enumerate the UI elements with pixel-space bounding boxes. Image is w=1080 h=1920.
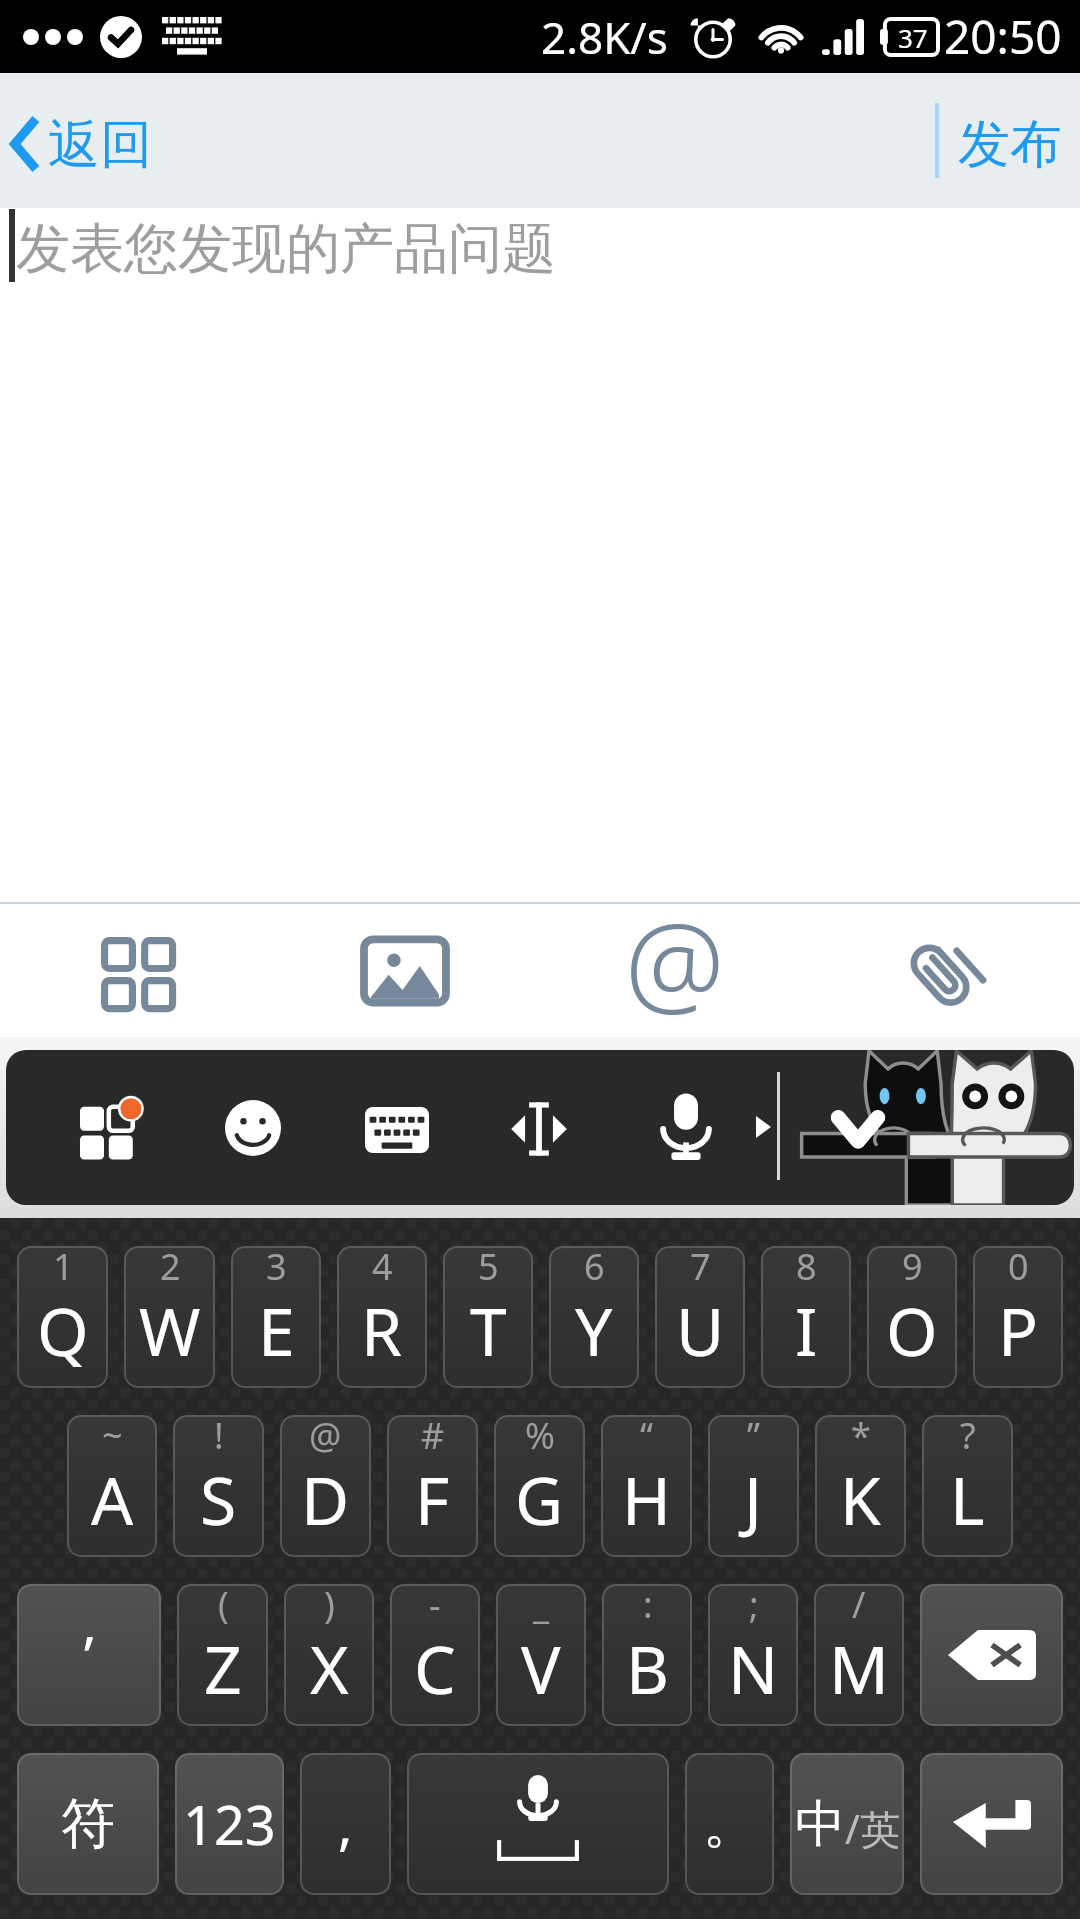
button[interactable]: 3	[231, 1246, 321, 1388]
button[interactable]: ?	[922, 1415, 1013, 1557]
button[interactable]: #	[387, 1415, 478, 1557]
staticText: O	[886, 1285, 938, 1375]
staticText: 3	[266, 1246, 287, 1291]
staticText: L	[950, 1454, 985, 1544]
staticText: /	[852, 1584, 866, 1629]
staticText: G	[515, 1454, 564, 1544]
button[interactable]: @	[280, 1415, 371, 1557]
staticText: _	[533, 1584, 549, 1629]
button[interactable]: 0	[973, 1246, 1063, 1388]
button[interactable]: Add image	[270, 904, 540, 1037]
staticText: /英	[845, 1801, 900, 1856]
button[interactable]: cn	[790, 1753, 904, 1895]
button[interactable]: enter	[920, 1753, 1063, 1895]
button[interactable]: ’	[17, 1584, 161, 1726]
button[interactable]: Emoji	[225, 1100, 281, 1156]
staticText: 7	[690, 1246, 711, 1291]
staticText: “	[640, 1415, 653, 1460]
staticText: 123	[183, 1787, 276, 1861]
staticText: ;	[749, 1584, 759, 1629]
button[interactable]: 4	[337, 1246, 427, 1388]
staticText: 8	[796, 1246, 817, 1291]
staticText: I	[795, 1285, 818, 1375]
button[interactable]: 9	[867, 1246, 957, 1388]
staticText: 20:50	[944, 5, 1062, 68]
button[interactable]: 。	[685, 1753, 774, 1895]
staticText: :	[643, 1584, 653, 1629]
staticText: E	[258, 1285, 295, 1375]
staticText: T	[470, 1285, 507, 1375]
staticText: V	[521, 1623, 561, 1713]
button[interactable]: %	[494, 1415, 585, 1557]
staticText: Y	[575, 1285, 613, 1375]
button[interactable]: 返回	[0, 88, 176, 194]
button[interactable]: -	[390, 1584, 480, 1726]
button[interactable]: “	[601, 1415, 692, 1557]
button[interactable]: Voice input	[660, 1092, 712, 1162]
button[interactable]: space	[407, 1753, 669, 1895]
staticText: -	[429, 1584, 441, 1629]
staticText: U	[676, 1285, 725, 1375]
staticText: 中	[795, 1793, 845, 1856]
button[interactable]: Keyboard layout	[365, 1107, 429, 1153]
button[interactable]: Templates	[0, 904, 270, 1037]
staticText: ”	[747, 1415, 760, 1460]
staticText: 发表您发现的产品问题	[16, 215, 556, 283]
staticText: X	[310, 1623, 349, 1713]
staticText: P	[998, 1285, 1038, 1375]
button[interactable]: *	[815, 1415, 906, 1557]
staticText: Q	[37, 1285, 89, 1375]
button[interactable]: 5	[443, 1246, 533, 1388]
button[interactable]: Move cursor	[510, 1098, 568, 1160]
button[interactable]: Mention user	[540, 904, 810, 1037]
button[interactable]: ~	[67, 1415, 157, 1557]
staticText: 2	[160, 1246, 181, 1291]
staticText: ~	[102, 1415, 123, 1460]
staticText: @	[309, 1415, 342, 1460]
staticText: 2.8K/s	[541, 7, 668, 67]
button[interactable]: 发布	[939, 88, 1080, 194]
button[interactable]: Toolbox	[80, 1096, 140, 1156]
button[interactable]: 7	[655, 1246, 745, 1388]
staticText: 1	[53, 1246, 74, 1291]
button[interactable]: 6	[549, 1246, 639, 1388]
button[interactable]: Attach file	[810, 904, 1080, 1037]
staticText: M	[829, 1623, 889, 1713]
staticText: ?	[960, 1415, 976, 1460]
staticText: 6	[584, 1246, 605, 1291]
staticText: 返回	[48, 112, 152, 178]
button[interactable]: backspace	[920, 1584, 1063, 1726]
button[interactable]: (	[177, 1584, 268, 1726]
staticText: 0	[1008, 1246, 1029, 1291]
staticText: Z	[204, 1623, 242, 1713]
staticText: ,	[338, 1787, 353, 1861]
staticText: D	[301, 1454, 350, 1544]
button[interactable]: ,	[300, 1753, 391, 1895]
button[interactable]: _	[496, 1584, 586, 1726]
staticText: !	[214, 1415, 224, 1460]
button[interactable]: /	[814, 1584, 904, 1726]
staticText: F	[415, 1454, 450, 1544]
staticText: *	[851, 1415, 871, 1460]
button[interactable]: 符	[17, 1753, 159, 1895]
staticText: @	[625, 884, 725, 1017]
button[interactable]: )	[284, 1584, 374, 1726]
button[interactable]: !	[173, 1415, 264, 1557]
button[interactable]: :	[602, 1584, 692, 1726]
button[interactable]: ”	[708, 1415, 799, 1557]
button[interactable]: 1	[17, 1246, 108, 1388]
staticText: J	[744, 1454, 763, 1544]
button[interactable]: Hide keyboard	[832, 1111, 884, 1147]
button[interactable]: 8	[761, 1246, 851, 1388]
staticText: 4	[372, 1246, 393, 1291]
button[interactable]: 123	[175, 1753, 284, 1895]
staticText: N	[728, 1623, 779, 1713]
staticText: ’	[84, 1618, 94, 1692]
staticText: H	[622, 1454, 671, 1544]
staticText: R	[361, 1285, 403, 1375]
button[interactable]: 2	[124, 1246, 215, 1388]
staticText: K	[840, 1454, 881, 1544]
staticText: W	[139, 1285, 201, 1375]
staticText: #	[421, 1415, 445, 1460]
button[interactable]: ;	[708, 1584, 798, 1726]
